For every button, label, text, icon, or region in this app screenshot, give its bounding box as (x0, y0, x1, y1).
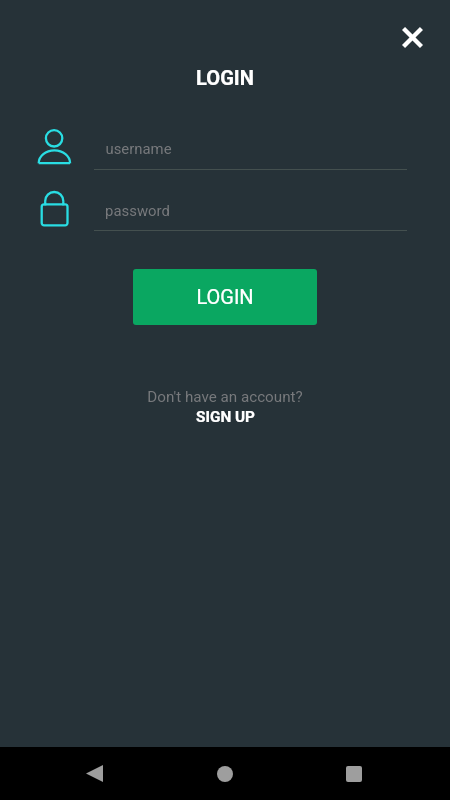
staticText: LOGIN (196, 285, 254, 308)
staticText: Don't have an account? (147, 388, 303, 406)
staticText: SIGN UP (196, 408, 255, 426)
button[interactable]: Recent apps (330, 747, 378, 800)
button[interactable]: username field (30, 124, 412, 172)
button[interactable]: password field (30, 185, 412, 233)
staticText: username (105, 140, 172, 157)
button[interactable]: SIGN UP (196, 408, 255, 426)
button[interactable]: Home (201, 747, 249, 800)
button[interactable]: Close (390, 15, 434, 59)
staticText: password (105, 202, 170, 219)
staticText: LOGIN (196, 66, 254, 90)
button[interactable]: Back (70, 747, 118, 800)
button[interactable]: LOGIN (133, 269, 317, 325)
